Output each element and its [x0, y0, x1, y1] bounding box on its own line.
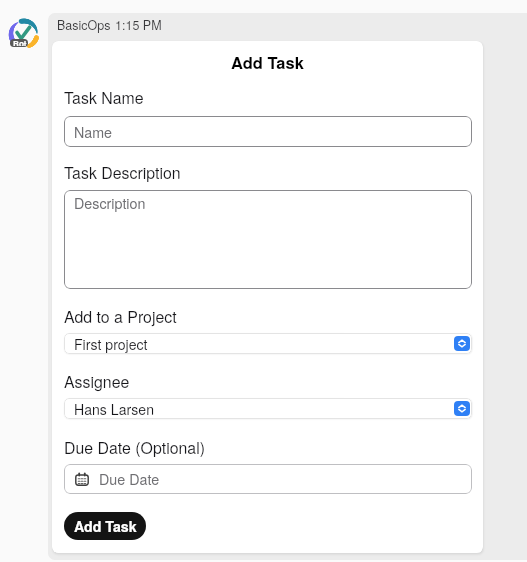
- staticText: Add to a Project: [64, 305, 177, 328]
- staticText: 1:15 PM: [115, 16, 162, 34]
- other: Open dropdown: [454, 401, 470, 416]
- staticText: Task Description: [64, 161, 181, 184]
- button[interactable]: Name: [64, 116, 472, 147]
- staticText: Add Task: [52, 50, 483, 74]
- staticText: First project: [74, 334, 148, 354]
- staticText: Due Date: [99, 469, 160, 489]
- button[interactable]: Due Date: [64, 464, 472, 494]
- staticText: Assignee: [64, 370, 130, 393]
- staticText: Due Date (Optional): [64, 436, 205, 459]
- staticText: Bot: [13, 39, 27, 46]
- staticText: Add Task: [74, 516, 137, 536]
- button[interactable]: Hans Larsen: [64, 398, 472, 419]
- button[interactable]: Add Task: [64, 512, 146, 540]
- staticText: Name: [74, 122, 113, 142]
- button[interactable]: First project: [64, 333, 472, 354]
- staticText: BasicOps: [57, 16, 111, 34]
- staticText: Description: [74, 193, 146, 213]
- button[interactable]: Description: [64, 190, 472, 289]
- staticText: Hans Larsen: [74, 399, 154, 419]
- other: Open dropdown: [454, 336, 470, 351]
- staticText: Task Name: [64, 86, 144, 109]
